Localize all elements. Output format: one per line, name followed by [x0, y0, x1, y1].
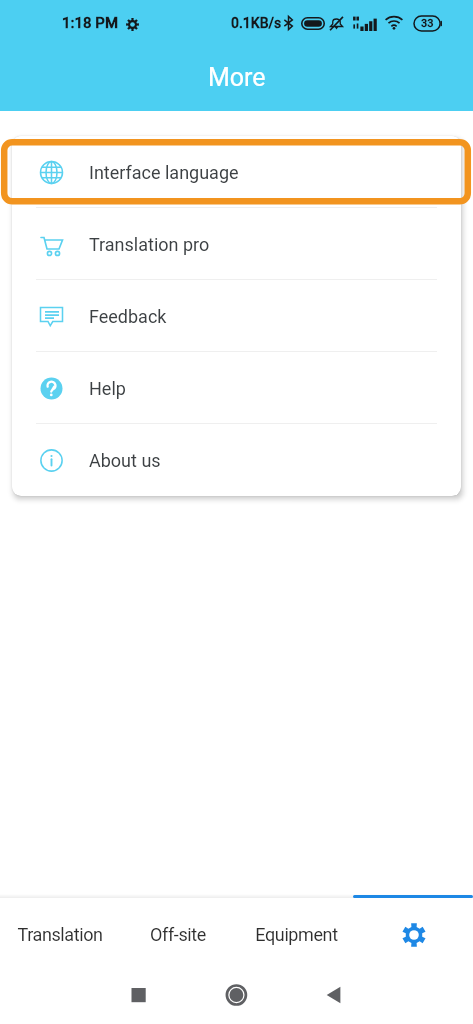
staticText: Feedback	[89, 306, 167, 327]
staticText: Translation	[17, 924, 103, 945]
staticText: About us	[89, 450, 161, 471]
staticText: Translation pro	[89, 234, 210, 255]
button[interactable]: Translation	[0, 896, 119, 969]
button[interactable]: Feedback	[12, 280, 461, 352]
button[interactable]: Settings	[355, 896, 473, 969]
button[interactable]: Translation pro	[12, 208, 461, 280]
button[interactable]: About us	[12, 424, 461, 496]
staticText: More	[208, 63, 266, 92]
button[interactable]: Off-site	[119, 896, 237, 969]
staticText: Off-site	[150, 924, 206, 945]
staticText: Help	[89, 378, 126, 399]
staticText: Interface language	[89, 162, 239, 183]
button[interactable]: Interface language	[12, 136, 461, 208]
button[interactable]: Equipment	[237, 896, 355, 969]
button[interactable]: Help	[12, 352, 461, 424]
staticText: Equipment	[255, 924, 338, 945]
staticText: 0.1KB/s	[231, 15, 282, 31]
staticText: 33	[421, 17, 434, 30]
staticText: 1:18 PM	[62, 14, 119, 32]
